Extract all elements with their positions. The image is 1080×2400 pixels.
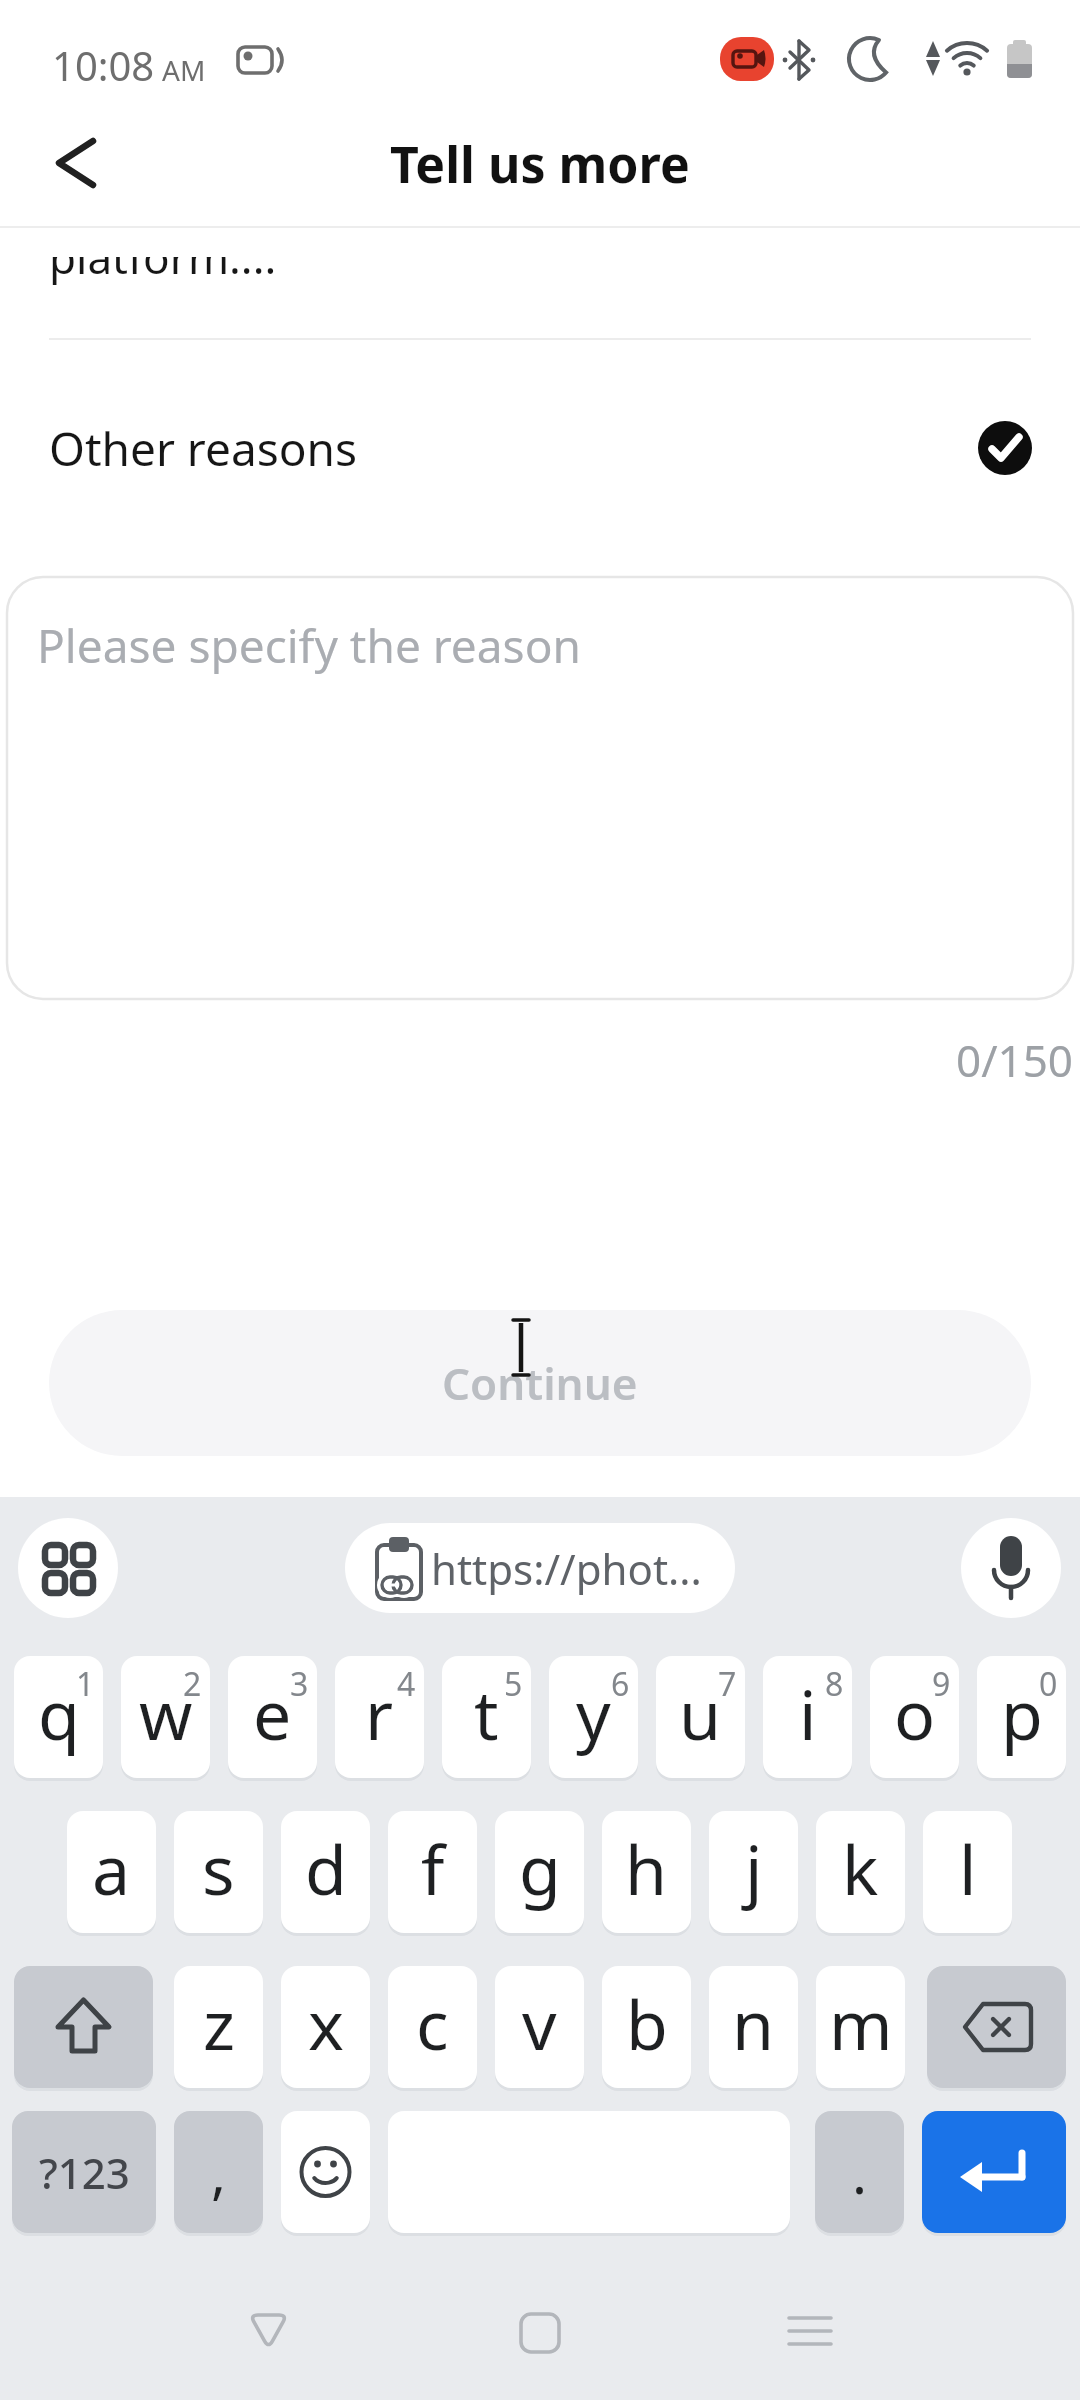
staticText: q	[38, 1667, 80, 1760]
staticText: j	[745, 1822, 763, 1915]
button[interactable]: y	[549, 1656, 638, 1778]
button[interactable]: e	[228, 1656, 317, 1778]
staticText: 6	[611, 1662, 630, 1702]
staticText: https://phot...	[431, 1540, 702, 1597]
staticText: Continue	[442, 1353, 638, 1413]
button[interactable]: Please specify the reason	[6, 576, 1074, 1000]
staticText: Other reasons	[49, 417, 358, 480]
staticText: Please specify the reason	[37, 614, 581, 677]
button[interactable]	[460, 2290, 620, 2380]
staticText: m	[829, 1977, 893, 2070]
staticText: ?123	[39, 2144, 130, 2201]
button[interactable]	[200, 2290, 360, 2380]
staticText: p	[1001, 1667, 1043, 1760]
staticText: AM	[162, 51, 206, 89]
button[interactable]	[730, 2290, 890, 2380]
button[interactable]: b	[602, 1966, 691, 2088]
staticText: d	[305, 1822, 347, 1915]
staticText: 1	[76, 1662, 95, 1702]
staticText: n	[732, 1977, 775, 2070]
button[interactable]: ?123	[12, 2111, 156, 2233]
button[interactable]: p	[977, 1656, 1066, 1778]
staticText: 5	[504, 1662, 523, 1702]
staticText: x	[308, 1977, 344, 2070]
staticText: s	[202, 1822, 235, 1915]
staticText: 2	[183, 1662, 202, 1702]
button[interactable]: r	[335, 1656, 424, 1778]
staticText: 9	[932, 1662, 951, 1702]
staticText: 10:08	[52, 38, 155, 92]
button[interactable]: ,	[174, 2111, 263, 2233]
button[interactable]: https://phot...	[345, 1523, 735, 1613]
staticText: 8	[825, 1662, 844, 1702]
button[interactable]: f	[388, 1811, 477, 1933]
staticText: ,	[211, 2134, 227, 2210]
staticText: v	[522, 1977, 557, 2070]
button[interactable]: j	[709, 1811, 798, 1933]
staticText: 4	[397, 1662, 416, 1702]
button[interactable]: h	[602, 1811, 691, 1933]
staticText: 0/150	[956, 1030, 1074, 1080]
staticText: g	[519, 1822, 561, 1915]
staticText: i	[799, 1667, 817, 1760]
button[interactable]: z	[174, 1966, 263, 2088]
button[interactable]: u	[656, 1656, 745, 1778]
staticText: u	[679, 1667, 722, 1760]
staticText: l	[959, 1822, 977, 1915]
button[interactable]: .	[815, 2111, 904, 2233]
staticText: .	[852, 2134, 868, 2210]
staticText: o	[894, 1667, 936, 1760]
button[interactable]: Continue	[49, 1310, 1031, 1456]
staticText: 0	[1039, 1662, 1058, 1702]
button[interactable]: l	[923, 1811, 1012, 1933]
staticText: t	[474, 1667, 499, 1760]
button[interactable]: c	[388, 1966, 477, 2088]
button[interactable]: x	[281, 1966, 370, 2088]
staticText: h	[625, 1822, 668, 1915]
button[interactable]: d	[281, 1811, 370, 1933]
button[interactable]	[30, 130, 110, 196]
button[interactable]	[14, 1966, 153, 2088]
button[interactable]: m	[816, 1966, 905, 2088]
button[interactable]: s	[174, 1811, 263, 1933]
staticText: e	[253, 1667, 292, 1760]
button[interactable]: n	[709, 1966, 798, 2088]
button[interactable]: t	[442, 1656, 531, 1778]
button[interactable]: o	[870, 1656, 959, 1778]
button[interactable]: q	[14, 1656, 103, 1778]
button[interactable]	[961, 1518, 1061, 1618]
staticText: z	[203, 1977, 235, 2070]
button[interactable]: a	[67, 1811, 156, 1933]
staticText: y	[576, 1667, 611, 1760]
staticText: 7	[718, 1662, 737, 1702]
button[interactable]: v	[495, 1966, 584, 2088]
button[interactable]	[18, 1518, 118, 1618]
staticText: f	[421, 1822, 445, 1915]
staticText: c	[416, 1977, 449, 2070]
button[interactable]: g	[495, 1811, 584, 1933]
button[interactable]: w	[121, 1656, 210, 1778]
staticText: 3	[290, 1662, 309, 1702]
button[interactable]	[281, 2111, 370, 2233]
button[interactable]: k	[816, 1811, 905, 1933]
button[interactable]	[922, 2111, 1066, 2233]
button[interactable]: i	[763, 1656, 852, 1778]
staticText: w	[139, 1667, 193, 1760]
staticText: r	[365, 1667, 394, 1760]
staticText: b	[626, 1977, 668, 2070]
staticText: Tell us more	[390, 130, 690, 196]
staticText: k	[842, 1822, 879, 1915]
button[interactable]: Other reasons	[0, 395, 1080, 501]
staticText: a	[92, 1822, 131, 1915]
button[interactable]	[927, 1966, 1066, 2088]
